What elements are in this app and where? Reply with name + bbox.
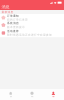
staticText: 活动推荐 bbox=[7, 29, 19, 33]
staticText: 系统消息 bbox=[7, 22, 19, 25]
staticText: 限时优惠活动正在进行中欢迎参加 bbox=[7, 33, 52, 36]
staticText: 您的订单已发货 bbox=[7, 18, 28, 21]
button[interactable]: 发现 bbox=[21, 89, 43, 100]
staticText: 消息 bbox=[2, 4, 10, 9]
staticText: 我的 bbox=[52, 96, 54, 97]
button[interactable]: 系统消息 bbox=[0, 21, 64, 29]
staticText: 最新消息 bbox=[2, 10, 14, 14]
button[interactable]: 首页 bbox=[0, 89, 21, 100]
staticText: 订单通知 bbox=[7, 14, 19, 17]
button[interactable]: 活动推荐 bbox=[0, 29, 64, 37]
button[interactable]: 订单通知 bbox=[0, 14, 64, 21]
staticText: 版本更新提示 bbox=[7, 25, 25, 29]
button[interactable]: 我的 bbox=[43, 89, 64, 100]
